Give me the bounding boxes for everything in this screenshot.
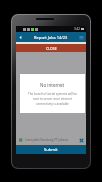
staticText: The bunch of aerial systems will be sent… — [25, 92, 80, 105]
staticText: Sunnydale Bandung PT Jakarta — [25, 138, 69, 142]
staticText: 3:42 — [74, 27, 80, 31]
button[interactable]: Sunnydale Bandung PT Jakarta — [16, 135, 86, 145]
staticText: CLOSE — [46, 46, 57, 51]
button[interactable]: More options — [78, 34, 85, 41]
button[interactable]: Back — [16, 33, 25, 42]
staticText: Submit — [44, 147, 58, 152]
staticText: Report Jobs 14/23 — [34, 35, 68, 40]
button[interactable]: Submit — [16, 145, 86, 154]
button[interactable]: CLOSE — [16, 44, 86, 52]
staticText: No internet — [40, 82, 65, 88]
